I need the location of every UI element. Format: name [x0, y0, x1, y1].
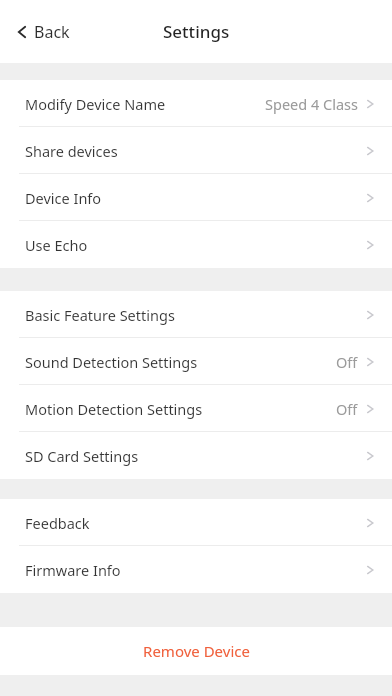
button[interactable]: SD Card Settings — [0, 432, 392, 479]
staticText: Use Echo — [25, 235, 88, 255]
staticText: Device Info — [25, 188, 102, 208]
staticText: Off — [336, 352, 358, 372]
other: Back — [14, 24, 30, 40]
staticText: Off — [336, 399, 358, 419]
button[interactable]: Firmware Info — [0, 546, 392, 593]
staticText: Remove Device — [143, 641, 250, 661]
staticText: Modify Device Name — [25, 94, 166, 114]
staticText: Motion Detection Settings — [25, 399, 203, 419]
button[interactable]: Modify Device Name — [0, 80, 392, 127]
button[interactable]: Back — [14, 10, 70, 54]
button[interactable]: Basic Feature Settings — [0, 291, 392, 338]
staticText: Back — [34, 21, 70, 43]
button[interactable]: Remove Device — [0, 627, 392, 675]
button[interactable]: Device Info — [0, 174, 392, 221]
staticText: SD Card Settings — [25, 446, 139, 466]
button[interactable]: Feedback — [0, 499, 392, 546]
staticText: Basic Feature Settings — [25, 305, 175, 325]
staticText: Sound Detection Settings — [25, 352, 198, 372]
staticText: Firmware Info — [25, 560, 121, 580]
button[interactable]: Share devices — [0, 127, 392, 174]
staticText: Speed 4 Class — [265, 94, 358, 114]
staticText: Feedback — [25, 513, 90, 533]
staticText: Share devices — [25, 141, 118, 161]
button[interactable]: Use Echo — [0, 221, 392, 268]
button[interactable]: Motion Detection Settings — [0, 385, 392, 432]
staticText: Settings — [163, 20, 230, 43]
button[interactable]: Sound Detection Settings — [0, 338, 392, 385]
